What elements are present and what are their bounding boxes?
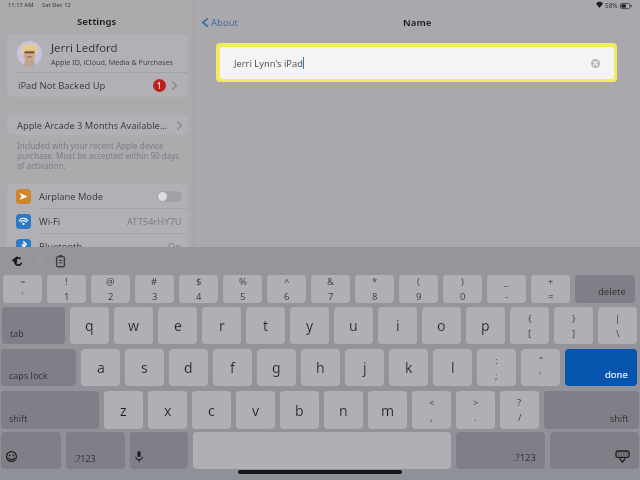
button[interactable]: a [81, 349, 120, 386]
staticText: 0 [460, 290, 466, 303]
button[interactable]: { [510, 307, 549, 344]
button[interactable]: q [70, 307, 109, 344]
staticText: p [481, 316, 490, 335]
button[interactable]: @ [91, 275, 130, 303]
button[interactable]: > [456, 391, 495, 429]
staticText: ; [495, 369, 498, 382]
button[interactable]: < [412, 391, 451, 429]
staticText: d [184, 358, 193, 377]
staticText: Bluetooth [39, 240, 83, 253]
button[interactable]: j [345, 349, 384, 386]
button[interactable]: | [598, 307, 637, 344]
staticText: About [211, 16, 238, 29]
button[interactable]: * [355, 275, 394, 303]
button[interactable]: Apple Arcade 3 Months Available... [7, 115, 188, 135]
button[interactable]: $ [179, 275, 218, 303]
button[interactable]: % [223, 275, 262, 303]
button[interactable]: ^ [267, 275, 306, 303]
staticText: 1 [157, 80, 162, 91]
button[interactable]: n [324, 391, 363, 429]
button[interactable]: d [169, 349, 208, 386]
button[interactable]: Wi-Fi [7, 209, 188, 233]
button[interactable]: y [290, 307, 329, 344]
staticText: . [474, 411, 477, 424]
other: Hide keyboard [616, 451, 629, 462]
button[interactable]: shift [544, 391, 639, 429]
staticText: k [405, 358, 413, 377]
staticText: Apple ID, iCloud, Media & Purchases [51, 57, 174, 67]
staticText: t [263, 316, 269, 335]
button[interactable]: o [422, 307, 461, 344]
button[interactable]: b [280, 391, 319, 429]
button[interactable]: ? [500, 391, 539, 429]
button[interactable]: " [521, 349, 560, 386]
staticText: i [396, 316, 400, 335]
button[interactable]: k [389, 349, 428, 386]
button[interactable]: m [368, 391, 407, 429]
staticText: c [208, 401, 215, 420]
button[interactable]: Emoji [1, 432, 61, 469]
button[interactable]: iPad Not Backed Up [7, 73, 188, 97]
button[interactable]: caps lock [1, 349, 76, 386]
button[interactable]: Bluetooth [7, 234, 188, 258]
staticText: .?123 [74, 452, 96, 464]
button[interactable]: done [565, 349, 637, 386]
button[interactable]: g [257, 349, 296, 386]
staticText: delete [598, 285, 626, 298]
button[interactable]: v [236, 391, 275, 429]
staticText: ! [65, 275, 68, 288]
button[interactable]: Undo [12, 256, 22, 266]
button[interactable]: Clear text [591, 59, 600, 68]
button[interactable]: ) [443, 275, 482, 303]
button[interactable]: p [466, 307, 505, 344]
button[interactable]: t [246, 307, 285, 344]
button[interactable]: : [477, 349, 516, 386]
button[interactable]: shift [1, 391, 99, 429]
button[interactable]: } [554, 307, 593, 344]
staticText: j [363, 358, 367, 377]
button[interactable]: About [200, 14, 240, 31]
button[interactable]: s [125, 349, 164, 386]
button[interactable]: x [148, 391, 187, 429]
button[interactable]: l [433, 349, 472, 386]
button[interactable]: Airplane Mode [7, 184, 188, 208]
button[interactable]: Hide keyboard [550, 432, 639, 469]
button[interactable]: ! [47, 275, 86, 303]
button[interactable]: h [301, 349, 340, 386]
button[interactable]: + [531, 275, 570, 303]
staticText: y [306, 316, 314, 335]
button[interactable]: u [334, 307, 373, 344]
button[interactable]: Jerri Lynn's iPad [220, 47, 614, 79]
staticText: Settings [77, 15, 117, 28]
other: Dictate [135, 451, 143, 462]
staticText: 58% [605, 1, 618, 10]
button[interactable]: _ [487, 275, 526, 303]
staticText: g [272, 358, 281, 377]
button[interactable]: Airplane Mode toggle [157, 191, 182, 202]
button[interactable]: Redo [33, 256, 43, 266]
button[interactable]: z [104, 391, 143, 429]
button[interactable]: w [114, 307, 153, 344]
button[interactable]: & [311, 275, 350, 303]
button[interactable]: tab [2, 307, 65, 344]
button[interactable]: .?123 [66, 432, 125, 469]
button[interactable]: # [135, 275, 174, 303]
button[interactable]: i [378, 307, 417, 344]
staticText: ^ [284, 275, 290, 288]
staticText: r [219, 316, 225, 335]
button[interactable]: e [158, 307, 197, 344]
staticText: b [295, 401, 304, 420]
button[interactable]: Dictate [130, 432, 188, 469]
button[interactable]: Jerri Ledford [7, 34, 188, 72]
button[interactable]: r [202, 307, 241, 344]
button[interactable]: .?123 [456, 432, 545, 469]
button[interactable]: Paste [56, 255, 65, 267]
staticText: 1 [64, 290, 70, 303]
button[interactable]: f [213, 349, 252, 386]
button[interactable]: c [192, 391, 231, 429]
button[interactable]: ~ [3, 275, 42, 303]
staticText: l [451, 358, 455, 377]
button[interactable]: delete [575, 275, 635, 303]
button[interactable]: ( [399, 275, 438, 303]
